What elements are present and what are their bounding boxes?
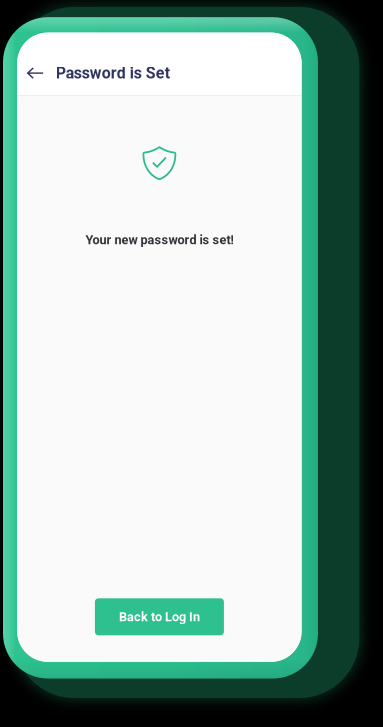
- button[interactable]: Password is Set: [47, 59, 177, 87]
- staticText: Back to Log In: [119, 609, 200, 624]
- button[interactable]: Back: [23, 59, 47, 87]
- staticText: Password is Set: [56, 64, 170, 82]
- button[interactable]: Back to Log In: [95, 598, 224, 635]
- staticText: Your new password is set!: [85, 232, 233, 247]
